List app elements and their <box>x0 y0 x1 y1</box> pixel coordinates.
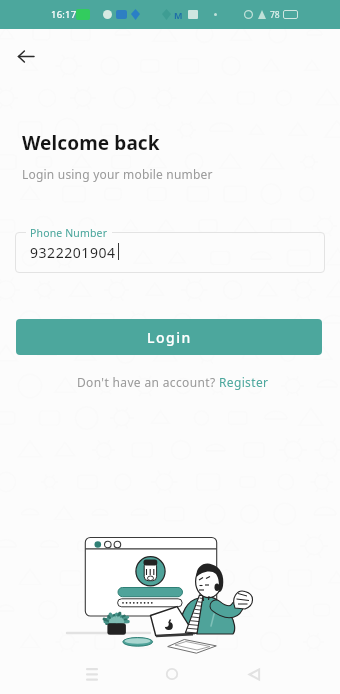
staticText: M <box>174 9 183 21</box>
staticText: 78 <box>270 9 280 21</box>
button[interactable]: Register <box>219 374 269 390</box>
staticText: 9322201904 <box>30 243 116 262</box>
staticText: Phone Number <box>30 226 108 240</box>
button[interactable]: Home <box>154 656 190 692</box>
staticText: Welcome back <box>22 130 160 156</box>
button[interactable]: Back <box>236 656 272 692</box>
staticText: Don't have an account? <box>77 374 219 390</box>
button[interactable]: Recent apps <box>74 656 110 692</box>
staticText: Register <box>219 374 269 390</box>
staticText: 16:17 <box>51 8 77 21</box>
staticText: Login using your mobile number <box>22 166 213 182</box>
staticText: Login <box>147 328 192 347</box>
button[interactable]: Login <box>16 319 322 355</box>
button[interactable]: Back <box>4 34 48 78</box>
